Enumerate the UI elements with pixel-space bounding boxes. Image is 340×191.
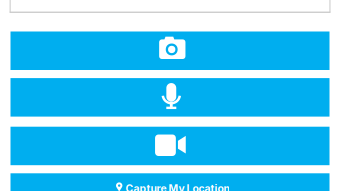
button[interactable]: Take Photo: [10, 31, 329, 70]
button[interactable]: Record Video: [10, 127, 329, 165]
button[interactable]: Capture My Location: [10, 173, 329, 191]
staticText: Capture My Location: [125, 182, 229, 191]
button[interactable]: Record Audio: [10, 78, 329, 117]
